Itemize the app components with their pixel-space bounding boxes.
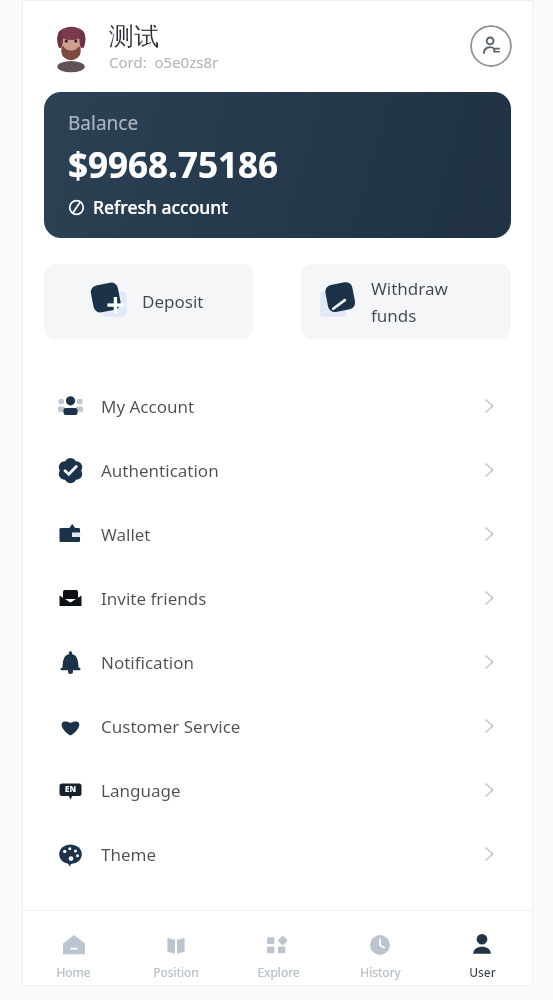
button[interactable]: Deposit (44, 264, 253, 339)
button[interactable]: Wallet (22, 502, 533, 566)
button[interactable]: Balance (44, 92, 511, 238)
staticText: Explore (257, 964, 300, 980)
staticText: Position (153, 964, 199, 980)
button[interactable]: Position (125, 932, 227, 986)
button[interactable]: Withdraw (301, 264, 511, 339)
button[interactable]: EN (22, 758, 533, 822)
button[interactable]: Switch account (470, 25, 512, 67)
button[interactable]: User (431, 932, 533, 986)
button[interactable]: Explore (227, 932, 329, 986)
staticText: $9968.75186 (68, 141, 279, 189)
staticText: EN (65, 783, 76, 794)
staticText: My Account (101, 395, 195, 418)
staticText: Wallet (101, 523, 151, 546)
staticText: Invite friends (101, 587, 207, 610)
staticText: Language (101, 779, 181, 802)
staticText: Customer Service (101, 715, 241, 738)
staticText: Withdraw (371, 277, 448, 300)
staticText: Refresh account (93, 195, 229, 219)
staticText: Cord: o5e0zs8r (109, 52, 219, 72)
staticText: Theme (101, 843, 157, 866)
staticText: User (469, 964, 496, 980)
button[interactable]: Notification (22, 630, 533, 694)
staticText: Home (56, 964, 91, 980)
button[interactable]: Invite friends (22, 566, 533, 630)
staticText: 测试 (109, 21, 159, 52)
button[interactable]: Theme (22, 822, 533, 886)
button[interactable]: My Account (22, 374, 533, 438)
staticText: Notification (101, 651, 194, 674)
button[interactable]: History (329, 932, 431, 986)
button[interactable]: Authentication (22, 438, 533, 502)
staticText: History (360, 964, 401, 980)
button[interactable]: Home (22, 932, 125, 986)
staticText: funds (371, 304, 417, 327)
staticText: Deposit (142, 290, 204, 313)
staticText: Balance (68, 110, 139, 136)
staticText: Authentication (101, 459, 219, 482)
button[interactable]: Customer Service (22, 694, 533, 758)
